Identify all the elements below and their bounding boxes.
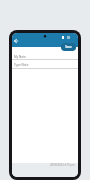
staticText: 28/05/2023 4:15 pm [50,163,75,167]
button[interactable]: Save [61,43,76,51]
button[interactable]: Back [13,38,19,44]
staticText: Save [65,45,72,49]
staticText: My Note [14,55,26,59]
staticText: Type Note [14,63,29,67]
